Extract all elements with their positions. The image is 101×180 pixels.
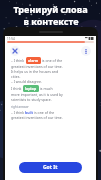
staticText: right answer [11, 105, 29, 109]
button[interactable]: Got It [19, 162, 82, 173]
staticText: scientists to study space. [11, 97, 52, 102]
button[interactable]: Close [10, 46, 20, 56]
staticText: greatest inventions of our time. [11, 64, 63, 69]
staticText: alarm [28, 58, 39, 63]
staticText: – I think [11, 58, 26, 63]
staticText: I think [11, 86, 23, 91]
staticText: greatest inventions of our time. [11, 115, 63, 120]
staticText: Got It [43, 164, 58, 171]
staticText: в контексте [23, 15, 79, 27]
staticText: – I think built is one of the [11, 110, 55, 115]
staticText: laptop [25, 86, 37, 91]
staticText: Тренируй слова [13, 3, 88, 15]
staticText: 11:54 [7, 37, 15, 41]
staticText: cities. [11, 74, 21, 79]
staticText: more important, as it is used by [11, 92, 63, 97]
staticText: – I would disagree. [11, 79, 42, 84]
button[interactable]: More options [81, 46, 91, 56]
staticText: It helps us in the houses and [11, 69, 59, 74]
staticText: is one of the [41, 58, 63, 63]
staticText: is much [39, 86, 53, 91]
